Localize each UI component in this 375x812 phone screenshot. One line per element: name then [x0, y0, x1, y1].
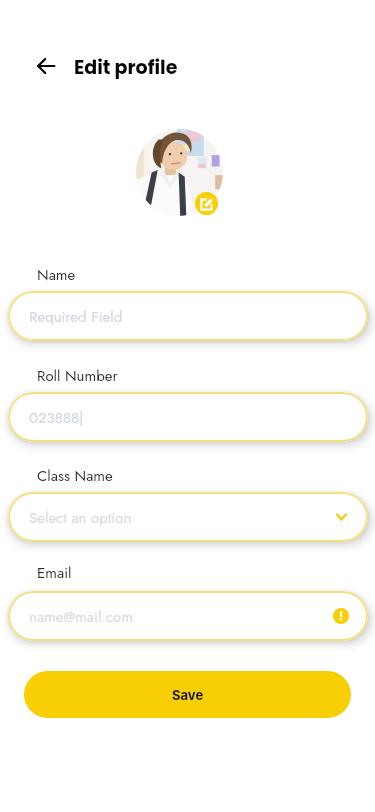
staticText: Email — [37, 562, 72, 584]
button[interactable]: Profile photo — [136, 129, 223, 216]
staticText: Roll Number — [37, 365, 118, 387]
button[interactable]: Required Field — [8, 291, 368, 341]
button[interactable]: Back — [30, 50, 62, 82]
button[interactable]: 023888| — [8, 392, 368, 442]
staticText: 023888| — [29, 407, 84, 429]
staticText: Required Field — [29, 306, 123, 328]
staticText: Name — [37, 264, 76, 286]
staticText: Save — [172, 687, 204, 703]
staticText: Class Name — [37, 465, 113, 487]
button[interactable]: Select an option — [8, 492, 368, 542]
button[interactable]: name@mail.com — [8, 591, 368, 641]
staticText: Select an option — [29, 507, 132, 529]
staticText: name@mail.com — [29, 606, 133, 628]
staticText: Edit profile — [74, 54, 178, 81]
button[interactable]: Save — [24, 671, 351, 718]
button[interactable]: Change profile photo — [195, 192, 218, 215]
